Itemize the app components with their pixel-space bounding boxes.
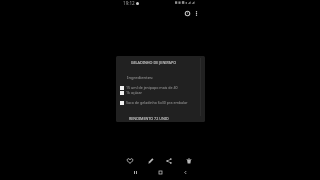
staticText: 19:12 [123,0,135,6]
button[interactable]: More options [189,6,203,20]
staticText: RENDIMENTO 72 UNID [129,116,169,121]
button[interactable]: Recent apps [130,167,141,178]
staticText: 15 uml de jenipapo mais de 40 [126,85,178,90]
staticText: Ingredientes: [127,75,154,81]
button[interactable]: Home [155,167,166,178]
button[interactable]: 15 uml de jenipapo mais de 40 [120,85,178,90]
button[interactable]: Timer [180,6,194,20]
button[interactable]: GELADINHO DE JENIPAPO [116,56,205,122]
button[interactable]: Favorite [123,154,137,168]
staticText: GELADINHO DE JENIPAPO [116,60,191,65]
button[interactable]: Share [162,154,176,168]
staticText: Saco de geladinho 6x30 pra embalar [126,100,188,105]
button[interactable]: Edit [144,154,158,168]
button[interactable]: Back [180,167,191,178]
button[interactable]: Saco de geladinho 6x30 pra embalar [120,100,188,105]
button[interactable]: Delete [182,154,196,168]
button[interactable]: 1k açúcar [120,90,143,95]
staticText: 1k açúcar [126,90,143,95]
